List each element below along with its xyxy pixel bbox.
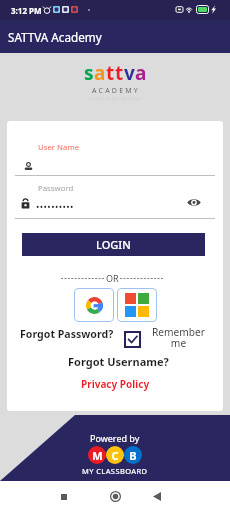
staticText: a [94, 60, 106, 86]
staticText: Password [38, 183, 74, 194]
staticText: s [84, 60, 94, 86]
staticText: User Name [38, 142, 80, 153]
staticText: t [115, 60, 124, 86]
staticText: t [106, 60, 115, 86]
button[interactable]: Home [99, 481, 131, 512]
staticText: •••••••••• [36, 200, 74, 212]
staticText: a [135, 60, 147, 86]
staticText: C [111, 448, 119, 463]
staticText: Remember me [149, 325, 208, 350]
button[interactable]: Remember me [124, 331, 141, 348]
staticText: Powered by [90, 432, 140, 444]
button[interactable]: SATTVA Academy [0, 20, 230, 53]
staticText: MY CLASSBOARD [82, 466, 148, 476]
button[interactable]: LOGIN [22, 233, 205, 256]
staticText: LOGIN [96, 237, 131, 252]
button[interactable]: Sign in [74, 288, 114, 322]
staticText: ACADEMY [92, 86, 140, 96]
button[interactable]: Privacy Policy [81, 377, 150, 391]
button[interactable]: Forgot Password? [20, 327, 114, 341]
staticText: B [129, 448, 137, 463]
staticText: M [92, 448, 103, 463]
staticText: 3:12 PM [11, 5, 42, 16]
button[interactable]: Recents [48, 481, 80, 512]
button[interactable]: Forgot Username? [68, 354, 169, 369]
button[interactable]: Show password [187, 198, 201, 207]
staticText: OR [106, 272, 119, 284]
staticText: v [124, 60, 135, 86]
button[interactable]: Sign in [117, 288, 157, 322]
button[interactable]: Back [141, 481, 173, 512]
staticText: SATTVA Academy [8, 29, 102, 45]
